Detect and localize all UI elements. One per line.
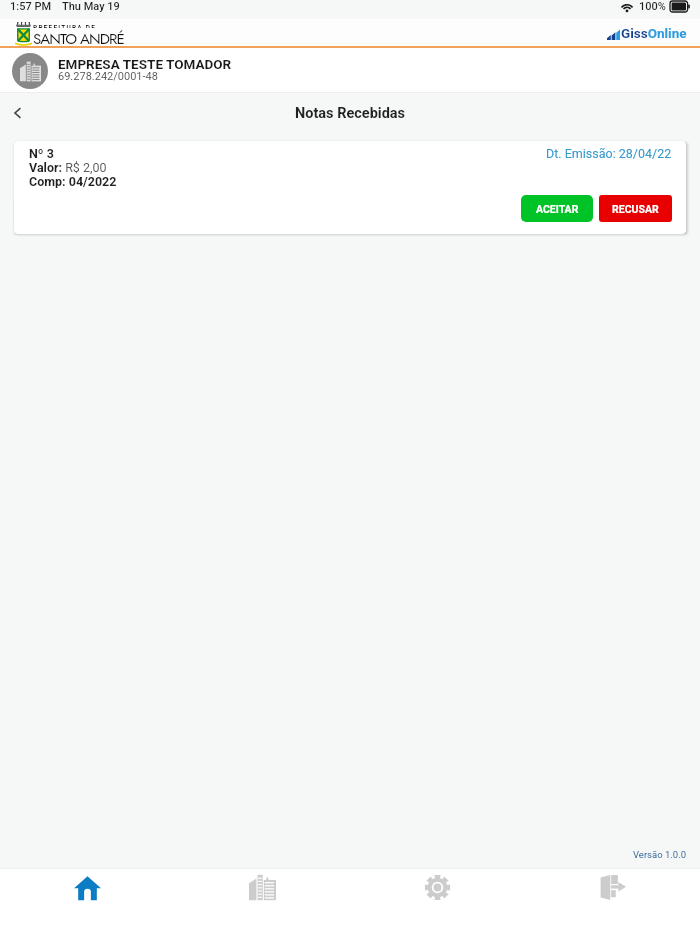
staticText: 100% <box>639 0 666 13</box>
staticText: Dt. Emissão: 28/04/22 <box>546 146 672 161</box>
button[interactable]: Voltar <box>0 95 36 131</box>
staticText: Comp: 04/2022 <box>29 174 117 188</box>
button[interactable]: Configurações <box>350 869 525 934</box>
staticText: GissOnline <box>621 25 687 41</box>
button[interactable]: RECUSAR <box>599 195 672 222</box>
staticText: Notas Recebidas <box>295 105 406 122</box>
staticText: ACEITAR <box>536 203 579 215</box>
button[interactable]: Empresas <box>175 869 350 934</box>
staticText: EMPRESA TESTE TOMADOR <box>58 56 232 69</box>
button[interactable]: ACEITAR <box>521 195 593 222</box>
button[interactable]: Nº 3 <box>14 141 686 234</box>
staticText: Thu May 19 <box>62 0 120 13</box>
staticText: SANTO ANDRÉ <box>33 28 124 48</box>
staticText: PREFEITURA DE <box>33 24 96 28</box>
staticText: Valor: R$ 2,00 <box>29 160 107 174</box>
staticText: Versão 1.0.0 <box>633 849 686 860</box>
button[interactable]: EMPRESA TESTE TOMADOR <box>0 48 700 93</box>
button[interactable]: Início <box>0 869 175 934</box>
staticText: RECUSAR <box>612 203 659 215</box>
staticText: Nº 3 <box>29 146 54 160</box>
staticText: 1:57 PM <box>10 0 52 13</box>
staticText: 69.278.242/0001-48 <box>58 70 158 83</box>
button[interactable]: Sair <box>525 869 700 934</box>
